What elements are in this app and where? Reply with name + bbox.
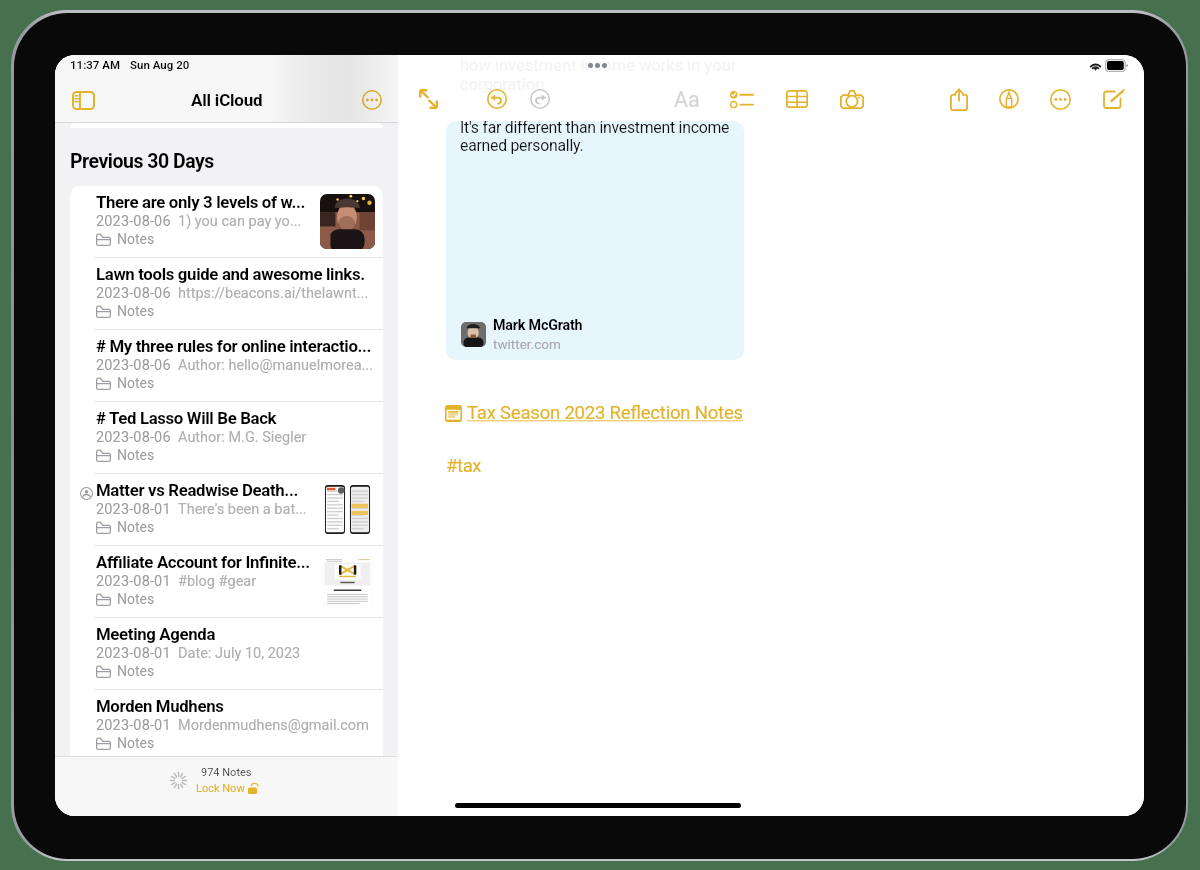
staticText: 1) you can pay yo... (178, 213, 302, 230)
button[interactable]: Matter vs Readwise Death... (70, 474, 383, 546)
button[interactable]: Table (779, 81, 815, 117)
button[interactable]: Redo (522, 81, 558, 117)
button[interactable]: Share (941, 81, 977, 117)
staticText: 2023-08-06 (96, 285, 171, 302)
staticText: corporation (460, 75, 545, 94)
staticText: Lock Now (196, 782, 245, 795)
button[interactable]: Lawn tools guide and awesome links. (70, 258, 383, 330)
staticText: There are only 3 levels of w... (96, 192, 306, 212)
staticText: Matter vs Readwise Death... (96, 480, 298, 500)
button[interactable]: More (1042, 81, 1078, 117)
staticText: 11:37 AM (70, 58, 121, 71)
staticText: #tax (446, 455, 482, 477)
staticText: Notes (117, 447, 155, 463)
staticText: Author: M.G. Siegler (178, 429, 307, 446)
staticText: Notes (117, 519, 155, 535)
staticText: # My three rules for online interactio..… (96, 336, 372, 356)
staticText: Tax Season 2023 Reflection Notes (467, 402, 743, 424)
button[interactable]: # My three rules for online interactio..… (70, 330, 383, 402)
staticText: #blog #gear (178, 573, 257, 590)
staticText: how investment income works in your (460, 56, 737, 75)
button[interactable]: Affiliate Account for Infinite... (70, 546, 383, 618)
staticText: https://beacons.ai/thelawnt... (178, 285, 369, 302)
button[interactable]: Show sidebar (65, 82, 101, 118)
button[interactable]: Checklist (723, 81, 759, 117)
staticText: Aa (674, 87, 700, 112)
staticText: Lawn tools guide and awesome links. (96, 264, 365, 284)
button[interactable]: Meeting Agenda (70, 618, 383, 690)
staticText: Notes (117, 303, 155, 319)
button[interactable]: Text format (669, 81, 705, 117)
staticText: 2023-08-06 (96, 429, 171, 446)
staticText: Notes (117, 663, 155, 679)
staticText: There's been a bat... (178, 501, 307, 518)
staticText: Affiliate Account for Infinite... (96, 552, 310, 572)
staticText: Previous 30 Days (70, 150, 214, 173)
button[interactable]: Tax Season 2023 Reflection Notes (445, 402, 743, 424)
staticText: Author: hello@manuelmorea... (178, 357, 374, 374)
button[interactable]: Morden Mudhens (70, 690, 383, 762)
staticText: 2023-08-01 (96, 573, 171, 590)
staticText: All iCloud (191, 90, 263, 110)
staticText: twitter.com (493, 336, 561, 352)
button[interactable]: Camera (834, 81, 870, 117)
staticText: It's far different than investment incom… (460, 121, 732, 154)
staticText: # Ted Lasso Will Be Back (96, 408, 277, 428)
staticText: Notes (117, 735, 155, 751)
button[interactable]: New note (1095, 81, 1131, 117)
staticText: Meeting Agenda (96, 624, 216, 644)
button[interactable]: There are only 3 levels of w... (70, 186, 383, 258)
staticText: Mark McGrath (493, 317, 583, 334)
staticText: Notes (117, 591, 155, 607)
staticText: Date: July 10, 2023 (178, 645, 301, 662)
staticText: 2023-08-01 (96, 717, 171, 734)
staticText: Sun Aug 20 (130, 58, 190, 71)
staticText: 2023-08-01 (96, 501, 171, 518)
staticText: 2023-08-06 (96, 213, 171, 230)
staticText: 974 Notes (201, 766, 252, 779)
staticText: 2023-08-01 (96, 645, 171, 662)
button[interactable]: Markup (991, 81, 1027, 117)
button[interactable]: Expand (410, 81, 446, 117)
staticText: Morden Mudhens (96, 696, 224, 716)
button[interactable]: More options (354, 82, 390, 118)
staticText: Notes (117, 375, 155, 391)
button[interactable]: # Ted Lasso Will Be Back (70, 402, 383, 474)
staticText: Notes (117, 231, 155, 247)
staticText: 2023-08-06 (96, 357, 171, 374)
button[interactable]: Undo (479, 81, 515, 117)
staticText: Mordenmudhens@gmail.com (178, 717, 369, 734)
